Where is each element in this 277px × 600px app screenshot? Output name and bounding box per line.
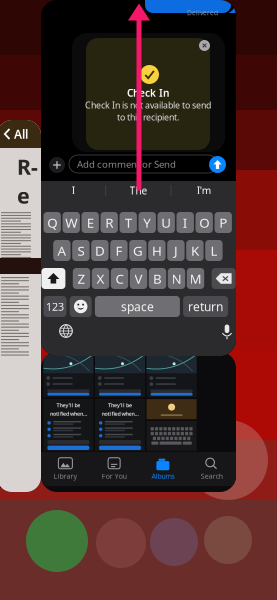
staticText: N [171,269,181,288]
button[interactable]: The [106,181,171,200]
button[interactable]: N [168,268,185,289]
staticText: They'll be [56,402,80,409]
button[interactable]: J [167,240,185,261]
button[interactable]: B [149,268,166,289]
button[interactable]: I [41,181,105,200]
button[interactable]: T [119,212,137,233]
button[interactable]: G [129,240,147,261]
staticText: The [129,184,147,197]
button[interactable]: P [214,212,232,233]
staticText: B [153,269,162,288]
staticText: Albums [151,471,174,481]
button[interactable]: K [186,240,204,261]
button[interactable]: Z [73,268,90,289]
button[interactable]: I [176,212,194,233]
button[interactable]: I'm [171,181,236,200]
button[interactable]: Shift [41,268,65,289]
staticText: O [199,213,209,232]
button[interactable]: Send [209,156,226,173]
staticText: P [219,213,227,232]
button[interactable]: F [110,240,128,261]
staticText: I'm [197,184,211,197]
button[interactable]: Y [138,212,156,233]
button[interactable]: return [183,296,228,317]
staticText: V [134,269,142,288]
staticText: I [72,184,75,197]
staticText: notified when… [50,410,87,417]
staticText: F [115,241,122,260]
button[interactable]: S [72,240,90,261]
staticText: K [191,241,199,260]
staticText: Q [47,213,57,232]
staticText: W [65,213,77,232]
staticText: Library [53,471,77,481]
staticText: space [121,298,154,315]
staticText: Add comment or Send [77,157,176,171]
button[interactable]: L [205,240,223,261]
button[interactable]: space [95,296,180,317]
button[interactable]: D [91,240,109,261]
staticText: Check In is not available to send [85,99,211,111]
button[interactable]: O [195,212,213,233]
staticText: A [57,241,66,260]
staticText: Re [17,152,38,210]
staticText: return [188,298,223,315]
button[interactable]: Add attachment [49,157,65,173]
staticText: U [161,213,171,232]
staticText: C [115,269,123,288]
staticText: notified when… [101,410,138,417]
staticText: They'll be [108,402,132,409]
button[interactable]: 123 [43,296,66,317]
button[interactable]: Albums [138,454,187,484]
button[interactable]: X [92,268,109,289]
button[interactable]: Library [41,454,90,484]
staticText: For You [102,471,127,481]
staticText: M [189,269,201,288]
button[interactable]: W [62,212,80,233]
button[interactable]: M [187,268,204,289]
staticText: R [105,213,113,232]
staticText: I [183,213,188,232]
staticText: T [125,213,132,232]
button[interactable]: E [81,212,99,233]
button[interactable]: Q [43,212,61,233]
button[interactable]: For You [90,454,139,484]
button[interactable]: U [157,212,175,233]
button[interactable]: Emoji [70,296,92,317]
button[interactable]: Search [187,454,236,484]
staticText: Check In [127,86,169,100]
staticText: D [95,241,105,260]
button[interactable]: H [148,240,166,261]
staticText: L [210,241,217,260]
button[interactable]: Delete [212,268,236,289]
staticText: X [96,269,104,288]
staticText: Y [143,213,151,232]
button[interactable]: Add comment or Send [69,155,217,173]
staticText: J [174,241,178,260]
staticText: Z [77,269,85,288]
staticText: Delivered [187,8,218,17]
staticText: All [14,126,28,142]
button[interactable]: A [53,240,71,261]
staticText: Search [201,471,223,481]
button[interactable]: V [130,268,147,289]
staticText: to this recipient. [117,111,179,123]
button[interactable]: C [111,268,128,289]
staticText: 123 [46,299,64,314]
button[interactable]: Close [198,39,211,52]
staticText: S [77,241,84,260]
button[interactable]: R [100,212,118,233]
staticText: H [152,241,162,260]
staticText: E [87,213,94,232]
staticText: G [133,241,143,260]
